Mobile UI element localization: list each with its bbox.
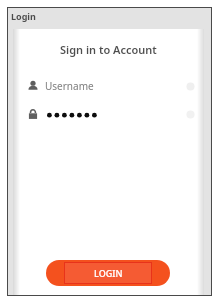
button[interactable]: Show password [184,108,197,121]
other: Password [27,108,39,120]
staticText: Username [45,79,94,93]
button[interactable]: Clear text [184,80,197,93]
other: Username [27,80,39,92]
button[interactable]: LOGIN [46,260,170,286]
staticText: Sign in to Account [60,42,157,57]
button[interactable]: Username [27,78,197,94]
staticText: LOGIN [94,267,123,279]
button[interactable]: Login [8,7,48,25]
button[interactable]: Password [27,106,197,122]
staticText: Login [11,10,36,22]
